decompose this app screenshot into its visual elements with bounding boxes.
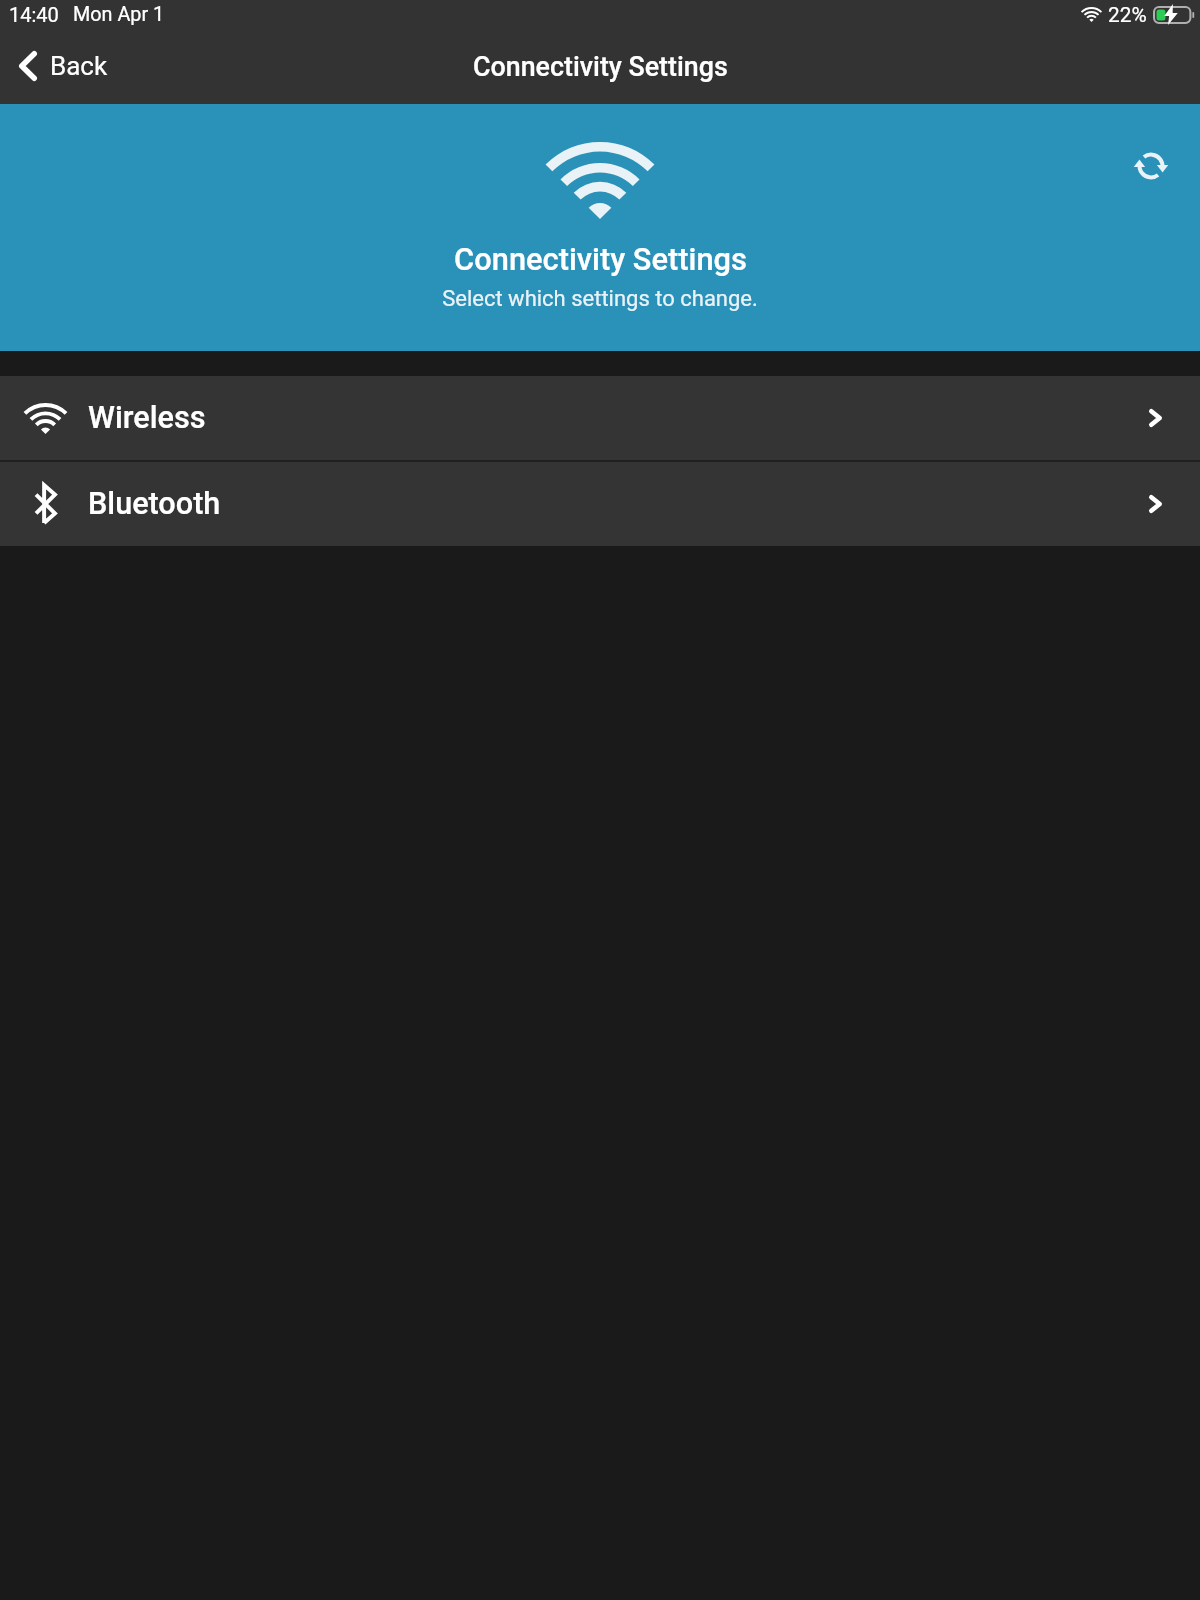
staticText: Connectivity Settings <box>454 241 747 277</box>
staticText: Select which settings to change. <box>442 286 758 312</box>
staticText: 22% <box>1108 3 1147 27</box>
staticText: Wireless <box>88 400 206 436</box>
button[interactable]: Back <box>0 41 122 91</box>
button[interactable]: Bluetooth <box>0 462 1200 546</box>
staticText: Mon Apr 1 <box>73 3 165 26</box>
staticText: Bluetooth <box>88 486 221 522</box>
button[interactable]: Refresh <box>1126 141 1176 191</box>
staticText: Back <box>50 51 108 81</box>
staticText: 14:40 <box>9 3 59 26</box>
button[interactable]: Wireless <box>0 376 1200 460</box>
staticText: Connectivity Settings <box>473 51 728 82</box>
